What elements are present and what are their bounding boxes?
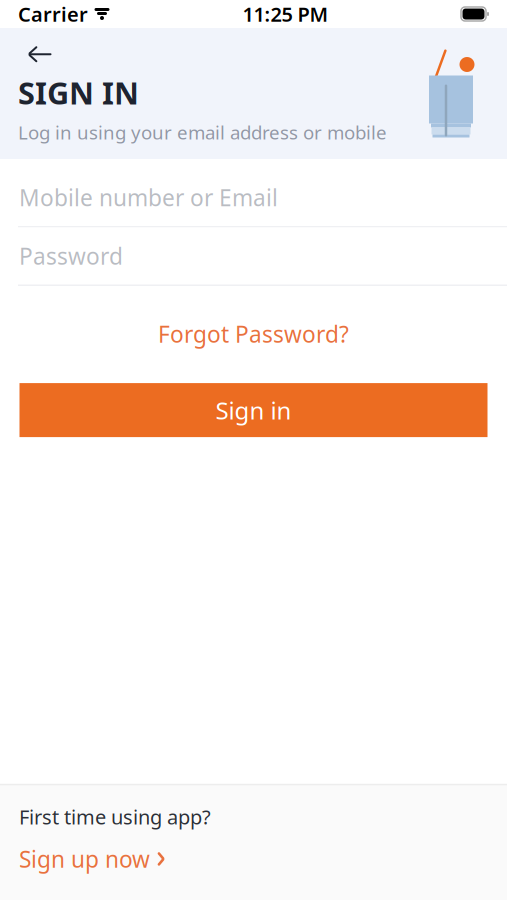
button[interactable]: Sign up now <box>19 838 166 880</box>
staticText: Forgot Password? <box>158 319 349 349</box>
staticText: Password <box>19 241 123 271</box>
staticText: Sign up now <box>19 844 150 874</box>
staticText: Log in using your email address or mobil… <box>18 120 387 145</box>
button[interactable]: Mobile number or Email <box>0 169 507 227</box>
staticText: Sign in <box>215 394 291 426</box>
button[interactable]: Sign in <box>19 383 487 437</box>
staticText: Carrier <box>18 1 88 27</box>
staticText: SIGN IN <box>18 72 139 113</box>
staticText: Mobile number or Email <box>19 182 278 212</box>
button[interactable]: Back <box>18 36 62 72</box>
button[interactable]: Forgot Password? <box>144 309 363 359</box>
button[interactable]: Password <box>0 227 507 286</box>
staticText: 11:25 PM <box>242 1 328 27</box>
staticText: First time using app? <box>19 803 211 830</box>
